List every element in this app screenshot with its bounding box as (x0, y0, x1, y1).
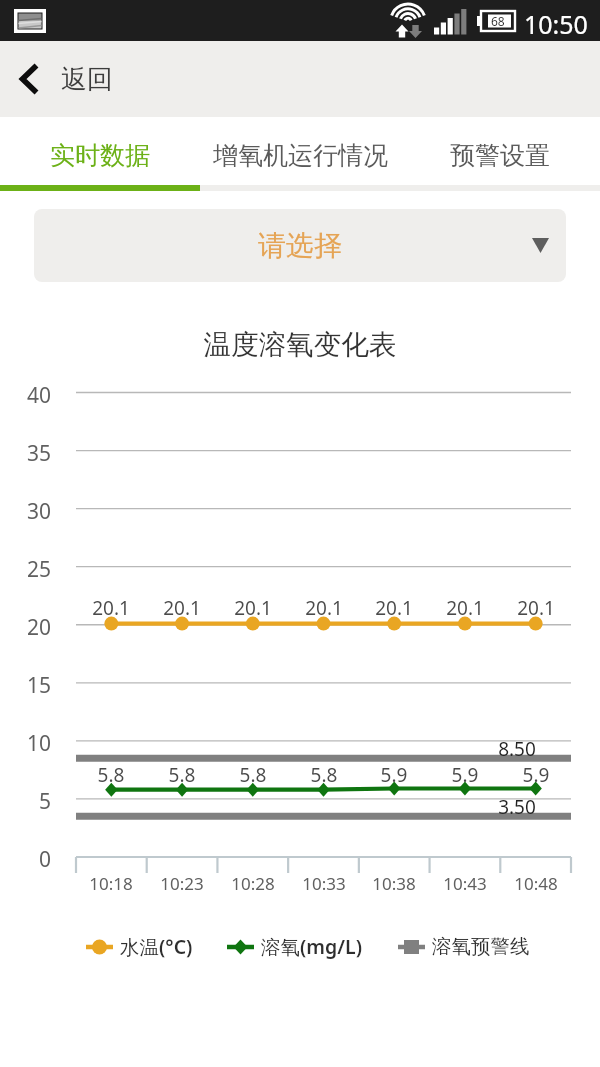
staticText: 40 (5, 381, 51, 410)
staticText: 水温(°C) (120, 933, 193, 960)
staticText: 10:28 (213, 872, 293, 895)
staticText: 0 (5, 845, 51, 874)
staticText: 预警设置 (450, 140, 550, 171)
staticText: 溶氧预警线 (432, 934, 530, 959)
staticText: 5.8 (284, 762, 364, 788)
other: 展开选择 (532, 238, 549, 253)
button[interactable]: 水温(°C) (86, 933, 193, 960)
staticText: 15 (5, 671, 51, 700)
staticText: 5.8 (213, 762, 293, 788)
staticText: 5.8 (142, 762, 222, 788)
staticText: 68 (491, 13, 505, 29)
button[interactable]: 溶氧预警线 (398, 934, 530, 959)
staticText: 10:48 (496, 872, 576, 895)
staticText: 20.1 (496, 595, 576, 621)
staticText: 10:23 (142, 872, 222, 895)
staticText: 实时数据 (50, 140, 150, 171)
button[interactable]: 增氧机运行情况 (200, 121, 400, 189)
staticText: 8.50 (467, 736, 567, 762)
staticText: 25 (5, 555, 51, 584)
staticText: 20.1 (354, 595, 434, 621)
staticText: 增氧机运行情况 (213, 140, 388, 171)
staticText: 10:33 (284, 872, 364, 895)
button[interactable]: 返回 (0, 41, 600, 117)
staticText: 20.1 (142, 595, 222, 621)
staticText: 20.1 (71, 595, 151, 621)
staticText: 20 (5, 613, 51, 642)
staticText: 35 (5, 439, 51, 468)
staticText: 10:18 (71, 872, 151, 895)
button[interactable]: 请选择 (34, 209, 566, 282)
staticText: 10:50 (524, 7, 588, 41)
staticText: 5.9 (425, 762, 505, 788)
staticText: 20.1 (213, 595, 293, 621)
staticText: 5.9 (354, 762, 434, 788)
staticText: 5.8 (71, 762, 151, 788)
staticText: 10:43 (425, 872, 505, 895)
button[interactable]: 预警设置 (400, 121, 600, 189)
staticText: 温度溶氧变化表 (0, 328, 600, 363)
button[interactable]: 溶氧(mg/L) (227, 933, 362, 960)
staticText: 10 (5, 729, 51, 758)
staticText: 20.1 (425, 595, 505, 621)
other: 返回 (20, 63, 39, 95)
staticText: 5 (5, 787, 51, 816)
staticText: 溶氧(mg/L) (261, 933, 362, 960)
staticText: 3.50 (467, 794, 567, 820)
staticText: 请选择 (258, 228, 342, 263)
button[interactable]: 实时数据 (0, 121, 200, 189)
staticText: 返回 (61, 63, 113, 96)
staticText: 30 (5, 497, 51, 526)
staticText: 20.1 (284, 595, 364, 621)
staticText: 5.9 (496, 762, 576, 788)
staticText: 10:38 (354, 872, 434, 895)
